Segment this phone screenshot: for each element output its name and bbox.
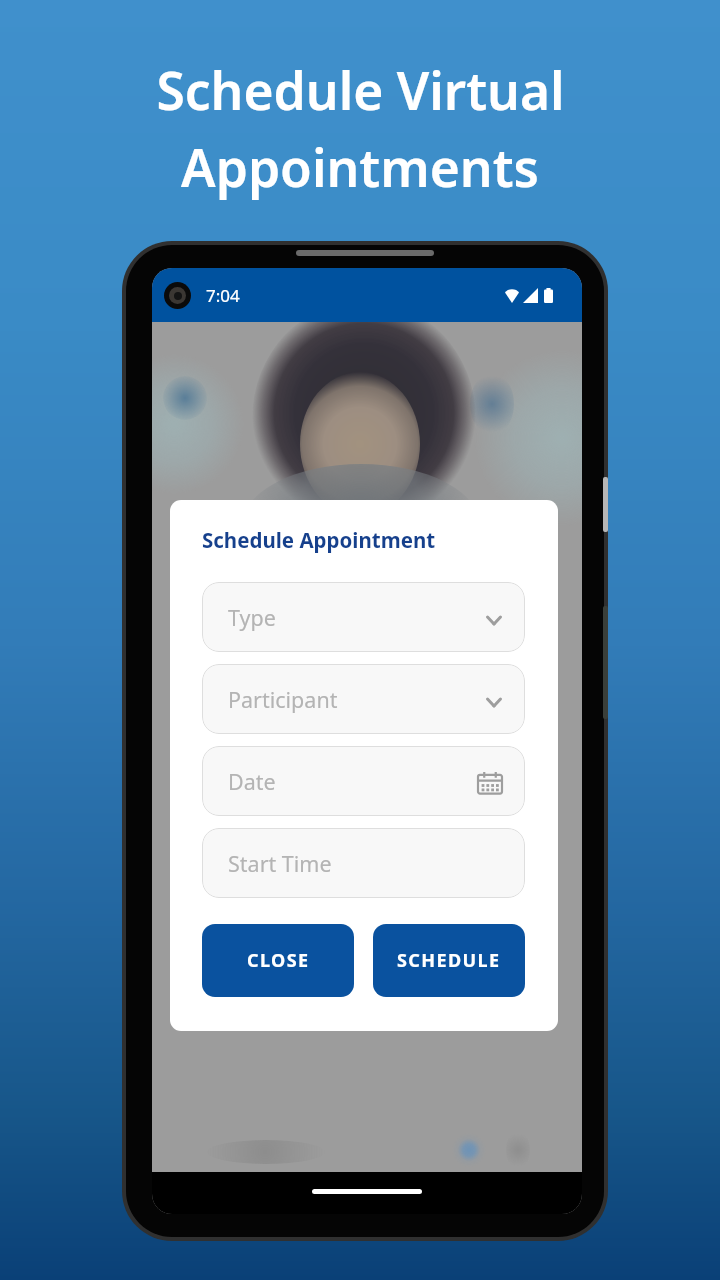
- staticText: Schedule Appointment: [202, 526, 436, 554]
- button[interactable]: CLOSE: [202, 924, 354, 997]
- staticText: Start Time: [228, 849, 332, 878]
- staticText: Date: [228, 767, 276, 796]
- button[interactable]: Participant: [202, 664, 525, 734]
- button[interactable]: SCHEDULE: [373, 924, 525, 997]
- staticText: Appointments: [181, 132, 539, 202]
- staticText: Schedule Virtual: [156, 55, 565, 125]
- button[interactable]: Start Time: [202, 828, 525, 898]
- staticText: 7:04: [206, 284, 240, 307]
- other: Open Participant options: [486, 697, 502, 708]
- button[interactable]: Type: [202, 582, 525, 652]
- staticText: CLOSE: [247, 948, 310, 973]
- staticText: SCHEDULE: [397, 948, 501, 973]
- other: Pick date: [478, 772, 502, 794]
- staticText: Participant: [228, 685, 338, 714]
- button[interactable]: Home: [312, 1189, 422, 1194]
- button[interactable]: Date: [202, 746, 525, 816]
- other: Open Type options: [486, 615, 502, 626]
- staticText: Type: [228, 603, 276, 632]
